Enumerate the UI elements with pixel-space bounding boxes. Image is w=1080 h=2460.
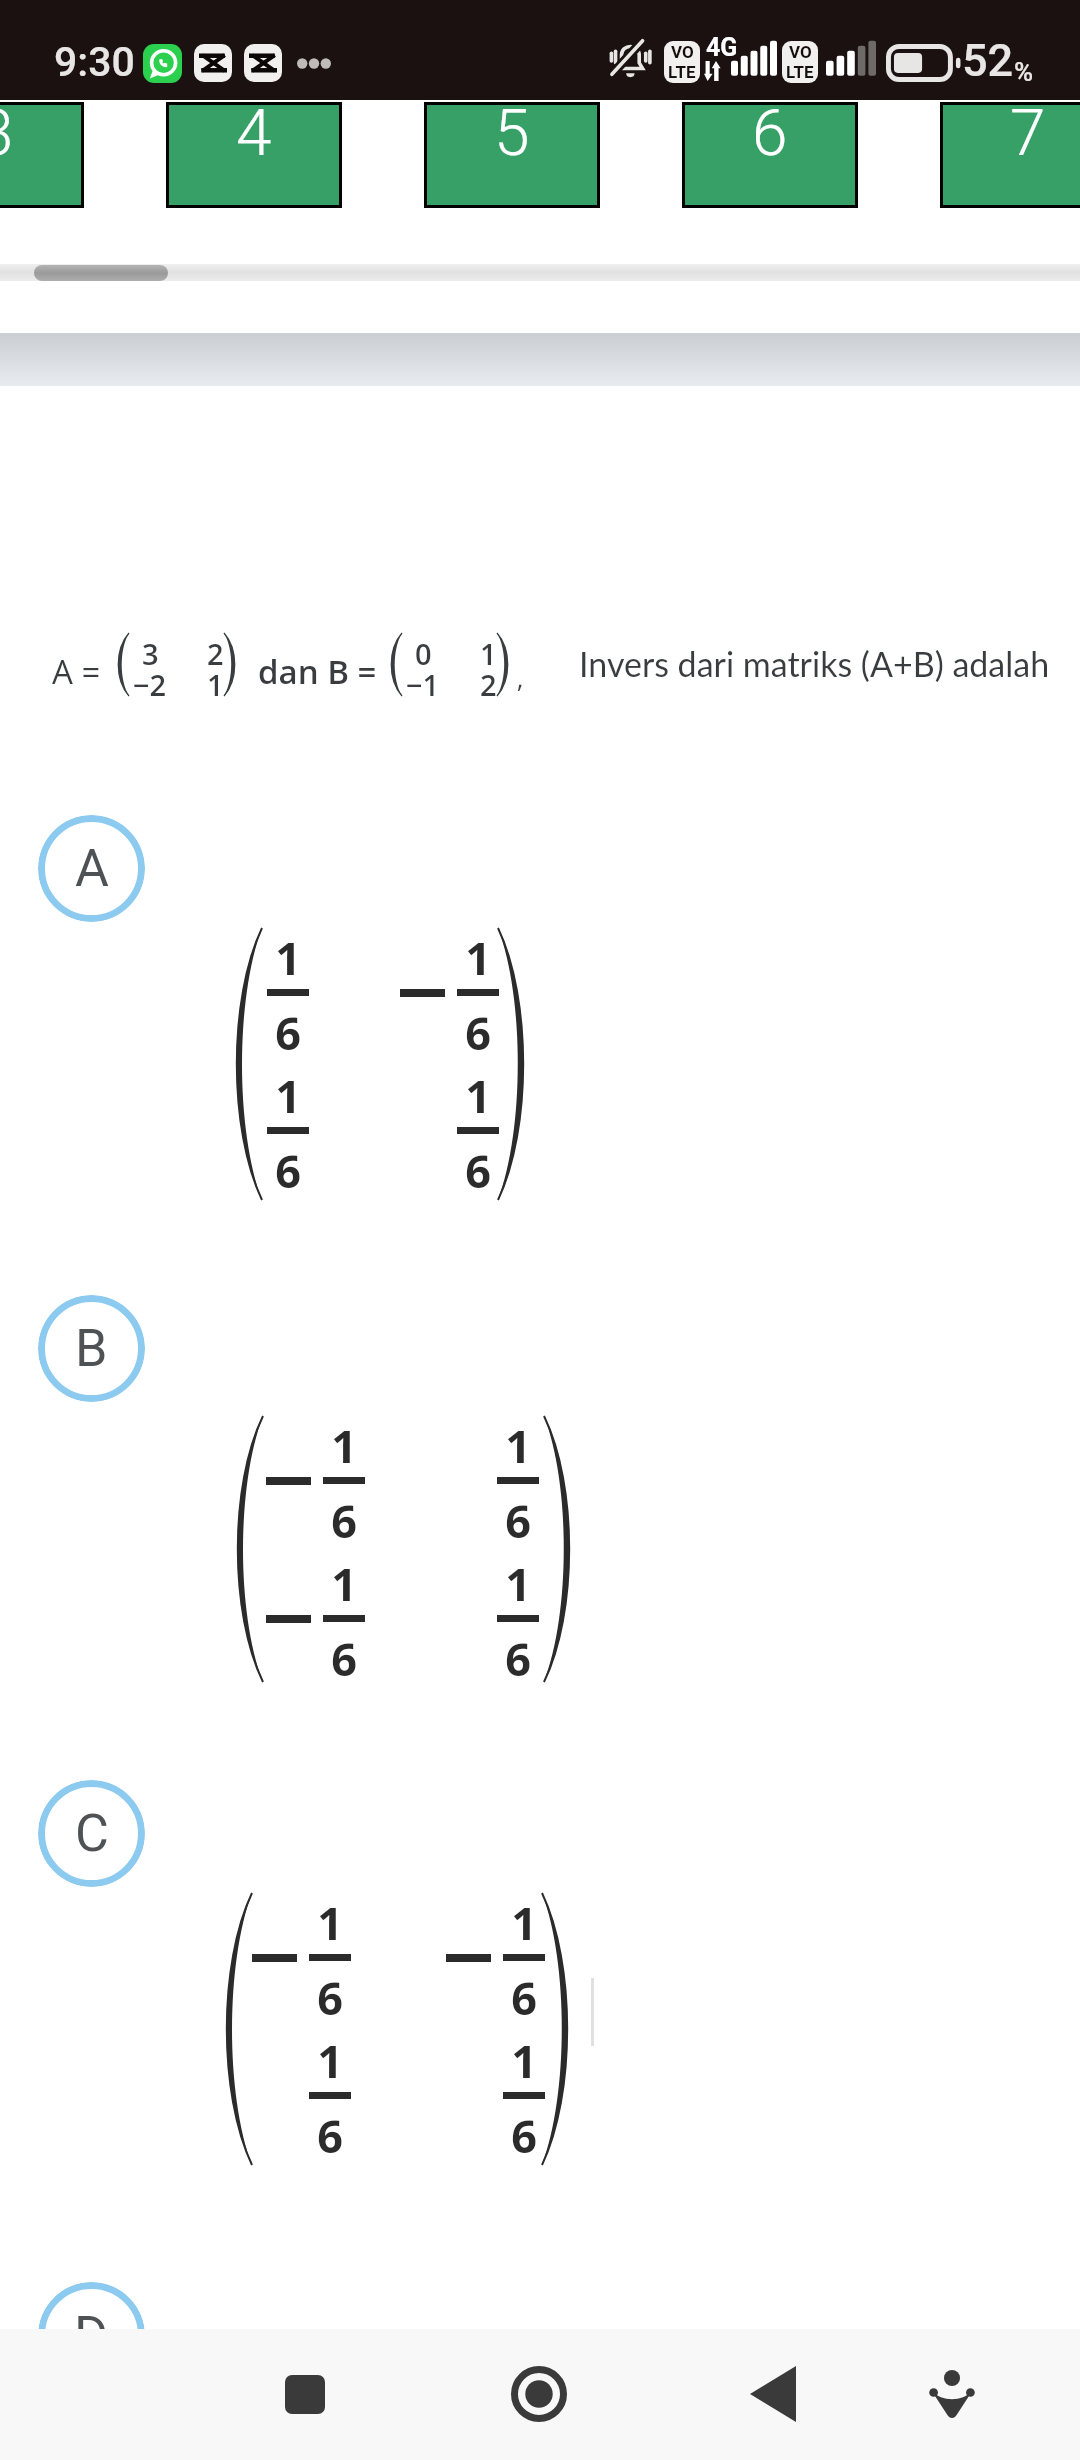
staticText: 6	[331, 1490, 357, 1551]
staticText: B	[75, 1318, 108, 1379]
staticText: 1	[317, 1892, 343, 1953]
staticText: 6	[331, 1628, 357, 1689]
staticText: LTE	[786, 62, 814, 82]
staticText: VO	[789, 42, 812, 62]
staticText: 6	[275, 1002, 301, 1063]
button[interactable]: 5	[424, 102, 600, 208]
staticText: 1	[511, 2030, 537, 2091]
staticText: 5	[494, 96, 530, 171]
staticText: 1	[511, 1892, 537, 1953]
staticText: Invers dari matriks (A+B) adalah	[579, 643, 1050, 684]
staticText: 1	[207, 665, 224, 696]
button[interactable]: B	[38, 1295, 145, 1402]
button[interactable]: Home	[484, 2339, 594, 2449]
staticText: 6	[317, 2105, 343, 2166]
staticText: D	[74, 2305, 109, 2366]
staticText: 0	[415, 634, 432, 665]
staticText: %	[1014, 57, 1034, 87]
button[interactable]: 4	[166, 102, 342, 208]
staticText: 1	[465, 927, 491, 988]
staticText: −2	[133, 665, 167, 696]
staticText: 6	[752, 96, 788, 171]
staticText: LTE	[668, 62, 696, 82]
staticText: −1	[406, 665, 440, 696]
button[interactable]: D	[38, 2282, 145, 2389]
staticText: ,	[517, 660, 524, 695]
staticText: 4G	[706, 33, 738, 62]
staticText: 6	[511, 2105, 537, 2166]
staticText: 1	[331, 1415, 357, 1476]
staticText: 6	[505, 1490, 531, 1551]
staticText: 6	[317, 1967, 343, 2028]
staticText: 3	[0, 96, 14, 171]
staticText: 52	[962, 34, 1014, 87]
button[interactable]: C	[38, 1780, 145, 1887]
button[interactable]: A	[38, 815, 145, 922]
staticText: 6	[465, 1140, 491, 1201]
staticText: dan B =	[258, 649, 377, 694]
staticText: 1	[275, 1065, 301, 1126]
button[interactable]: 3	[0, 102, 84, 208]
staticText: 1	[505, 1553, 531, 1614]
staticText: A	[75, 838, 109, 899]
staticText: 4	[236, 96, 272, 171]
staticText: 1	[505, 1415, 531, 1476]
staticText: 2	[207, 634, 224, 665]
staticText: 1	[317, 2030, 343, 2091]
staticText: 6	[465, 1002, 491, 1063]
button[interactable]: Back	[718, 2339, 828, 2449]
staticText: 6	[505, 1628, 531, 1689]
staticText: 7	[1010, 96, 1046, 171]
button[interactable]: 7	[940, 102, 1080, 208]
button[interactable]: 6	[682, 102, 858, 208]
staticText: 6	[275, 1140, 301, 1201]
staticText: 1	[331, 1553, 357, 1614]
staticText: 3	[142, 634, 159, 665]
staticText: A =	[52, 649, 101, 694]
staticText: VO	[671, 42, 694, 62]
staticText: 9:30	[54, 38, 135, 86]
staticText: C	[75, 1803, 109, 1864]
staticText: 1	[480, 634, 497, 665]
button[interactable]: Hide keyboard	[897, 2339, 1007, 2449]
staticText: 1	[465, 1065, 491, 1126]
button[interactable]: Recent apps	[250, 2339, 360, 2449]
staticText: 1	[275, 927, 301, 988]
staticText: 6	[511, 1967, 537, 2028]
staticText: 2	[480, 665, 497, 696]
